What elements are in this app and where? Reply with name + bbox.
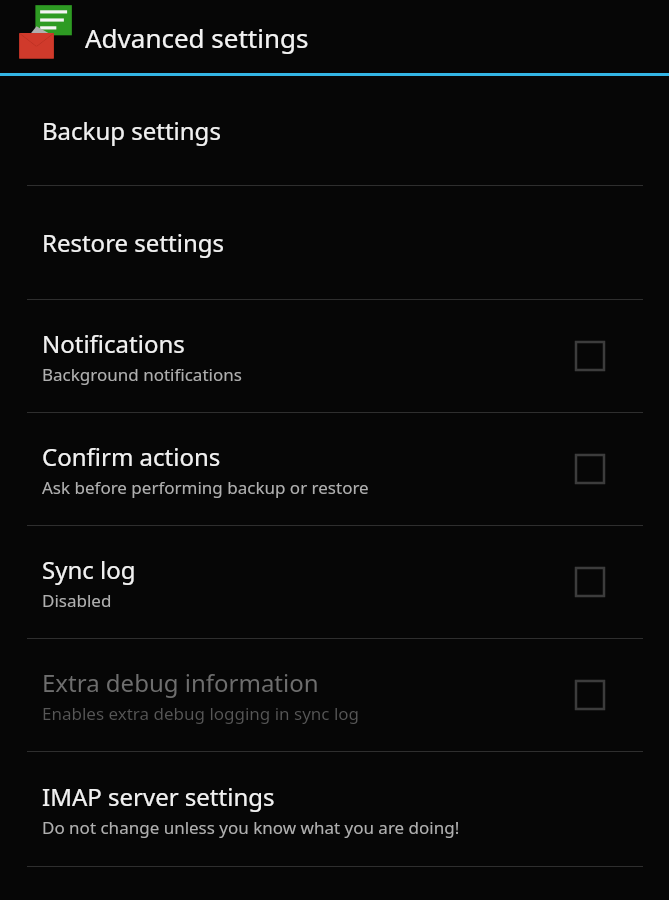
staticText: IMAP server settings <box>42 780 275 813</box>
staticText: Sync log <box>42 553 136 586</box>
staticText: Notifications <box>42 327 185 360</box>
button[interactable]: Sync log <box>568 560 612 604</box>
staticText: Restore settings <box>42 226 224 259</box>
staticText: Enables extra debug logging in sync log <box>42 702 360 725</box>
button[interactable]: Extra debug information <box>568 673 612 717</box>
button[interactable]: Notifications <box>0 300 669 412</box>
staticText: Background notifications <box>42 363 242 386</box>
staticText: Backup settings <box>42 114 221 147</box>
other: App icon <box>16 4 73 62</box>
staticText: Disabled <box>42 589 112 612</box>
staticText: Extra debug information <box>42 666 319 699</box>
button[interactable]: Sync log <box>0 526 669 638</box>
button[interactable]: Extra debug information <box>0 639 669 751</box>
staticText: Ask before performing backup or restore <box>42 476 369 499</box>
staticText: Confirm actions <box>42 440 221 473</box>
button[interactable]: Notifications <box>568 334 612 378</box>
staticText: Advanced settings <box>85 20 309 55</box>
button[interactable]: Confirm actions <box>568 447 612 491</box>
button[interactable]: Restore settings <box>0 186 669 299</box>
staticText: Do not change unless you know what you a… <box>42 816 460 839</box>
button[interactable]: Backup settings <box>0 76 669 185</box>
button[interactable]: Confirm actions <box>0 413 669 525</box>
button[interactable]: IMAP server settings <box>0 752 669 866</box>
